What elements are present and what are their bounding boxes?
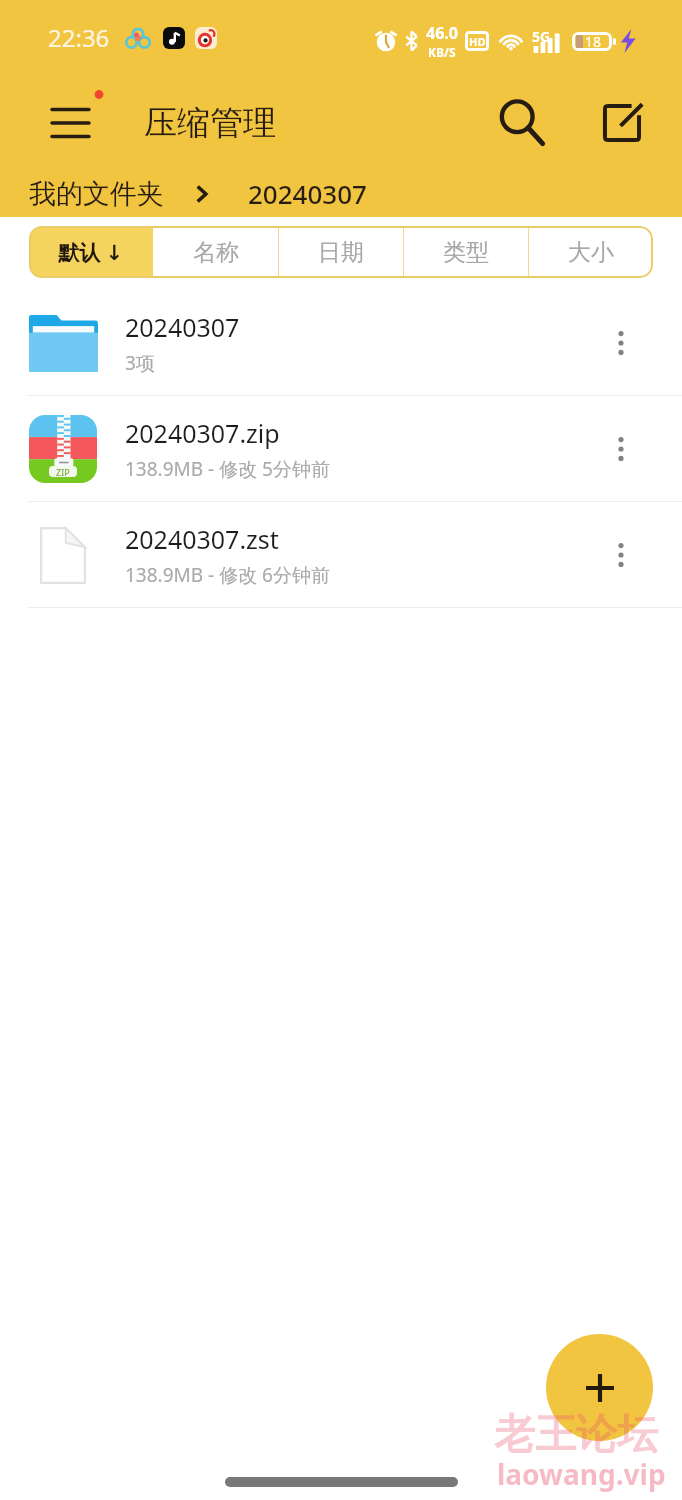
button[interactable]: 新建压缩 [592, 93, 652, 153]
staticText: 22:36 [48, 21, 110, 54]
button[interactable]: 更多 [592, 420, 650, 478]
staticText: 压缩管理 [144, 102, 276, 144]
button[interactable]: 20240307 [0, 290, 682, 395]
button[interactable]: 名称 [153, 226, 278, 278]
staticText: 18 [585, 32, 602, 51]
staticText: 20240307 [248, 176, 367, 211]
staticText: 名称 [193, 238, 239, 267]
staticText: ZIP [56, 466, 70, 477]
staticText: 138.9MB - 修改 6分钟前 [125, 562, 330, 588]
button[interactable]: 类型 [403, 226, 528, 278]
staticText: 类型 [443, 238, 489, 267]
staticText: 20240307.zst [125, 522, 279, 556]
button[interactable]: 搜索 [492, 93, 552, 153]
button[interactable]: 菜单 [42, 93, 102, 153]
staticText: HD [469, 34, 486, 49]
button[interactable]: ZIP [0, 396, 682, 501]
staticText: 默认 ↓ [58, 238, 124, 267]
button[interactable]: 日期 [278, 226, 403, 278]
button[interactable]: 更多 [592, 314, 650, 372]
staticText: 5G [532, 27, 551, 46]
button[interactable]: 新建 [546, 1334, 653, 1441]
staticText: laowang.vip [497, 1455, 666, 1493]
button[interactable]: 更多 [592, 526, 650, 584]
staticText: KB/S [428, 44, 456, 60]
staticText: 我的文件夹 [29, 177, 164, 211]
staticText: 老王论坛 [494, 1409, 658, 1461]
staticText: 46.0 [426, 22, 458, 44]
staticText: 20240307.zip [125, 416, 280, 450]
button[interactable]: 默认 ↓ [29, 226, 153, 278]
staticText: 3项 [125, 350, 155, 376]
button[interactable]: 大小 [528, 226, 653, 278]
staticText: 138.9MB - 修改 5分钟前 [125, 456, 330, 482]
staticText: 20240307 [125, 310, 240, 344]
staticText: 日期 [318, 238, 364, 267]
button[interactable]: 20240307.zst [0, 502, 682, 607]
staticText: 大小 [568, 238, 614, 267]
